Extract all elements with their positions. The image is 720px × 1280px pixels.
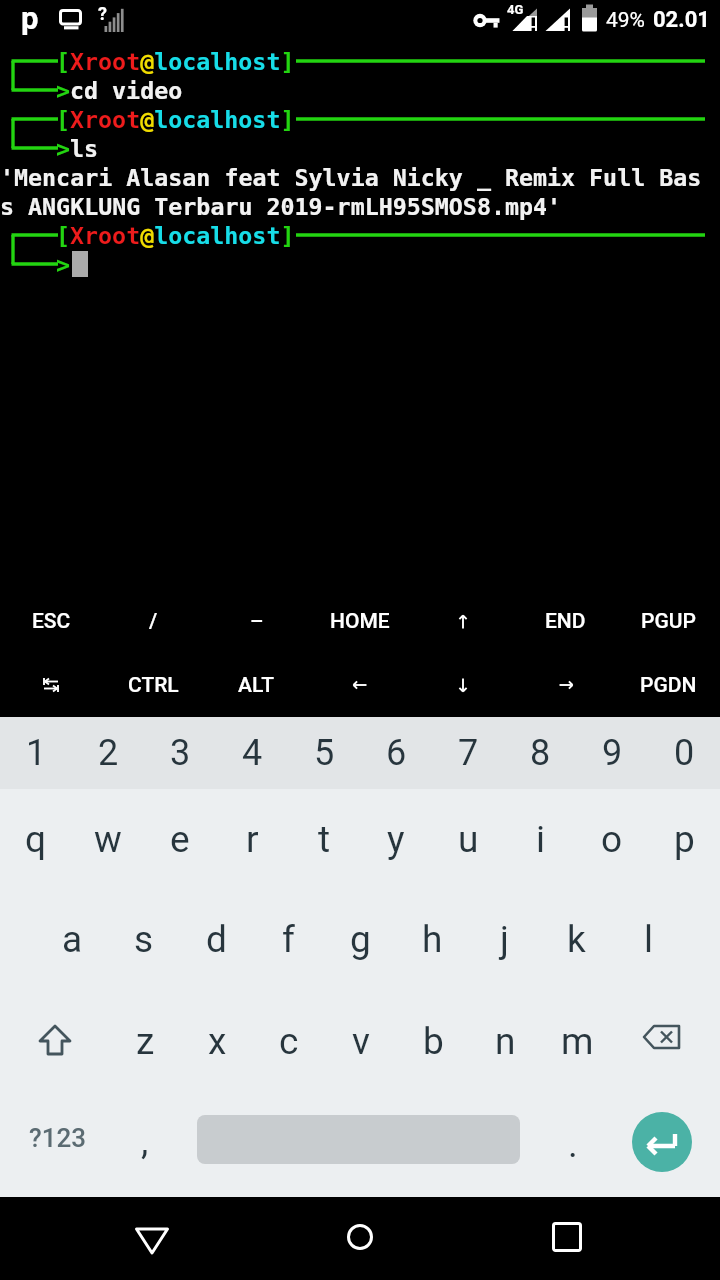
staticText: 49% xyxy=(606,8,645,33)
staticText: ESC xyxy=(32,609,71,634)
staticText: PGDN xyxy=(640,673,697,698)
button[interactable]: u xyxy=(432,790,504,888)
button[interactable]: 6 xyxy=(360,717,432,789)
staticText: z xyxy=(136,1020,155,1063)
button[interactable]: CTRL xyxy=(102,653,205,717)
button[interactable]: g xyxy=(324,890,396,988)
staticText: PGUP xyxy=(641,609,696,634)
button[interactable]: r xyxy=(216,790,288,888)
button[interactable] xyxy=(5,990,105,1092)
button[interactable] xyxy=(609,990,715,1092)
button[interactable]: s xyxy=(108,890,180,988)
button[interactable]: t xyxy=(288,790,360,888)
button[interactable]: b xyxy=(397,990,469,1092)
button[interactable]: w xyxy=(72,790,144,888)
button[interactable] xyxy=(0,653,102,717)
button[interactable]: – xyxy=(205,590,308,653)
button[interactable]: 3 xyxy=(144,717,216,789)
button[interactable]: ESC xyxy=(0,590,102,653)
staticText: 3 xyxy=(170,732,191,774)
button[interactable] xyxy=(514,653,617,717)
staticText: s xyxy=(134,918,154,961)
button[interactable]: j xyxy=(468,890,540,988)
staticText: t xyxy=(318,818,331,861)
button[interactable] xyxy=(330,1207,390,1267)
button[interactable]: HOME xyxy=(308,590,411,653)
button[interactable]: PGUP xyxy=(617,590,720,653)
staticText: 'Mencari Alasan feat Sylvia Nicky _ Remi… xyxy=(0,164,702,191)
button[interactable] xyxy=(411,590,514,653)
staticText: / xyxy=(149,609,158,634)
staticText: ?123 xyxy=(29,1123,86,1153)
button[interactable]: h xyxy=(396,890,468,988)
button[interactable] xyxy=(537,1207,597,1267)
button[interactable]: c xyxy=(253,990,325,1092)
button[interactable]: p xyxy=(648,790,720,888)
button[interactable] xyxy=(122,1210,182,1270)
staticText: y xyxy=(387,818,405,861)
button[interactable]: 7 xyxy=(432,717,504,789)
staticText: h xyxy=(422,918,443,961)
staticText: 7 xyxy=(458,732,479,774)
button[interactable]: v xyxy=(325,990,397,1092)
staticText: [Xroot@localhost] xyxy=(56,106,295,133)
button[interactable]: l xyxy=(612,890,684,988)
staticText: 1 xyxy=(26,732,47,774)
button[interactable]: k xyxy=(540,890,612,988)
button[interactable]: , xyxy=(110,1092,180,1190)
button[interactable]: 4 xyxy=(216,717,288,789)
button[interactable]: x xyxy=(181,990,253,1092)
staticText: q xyxy=(25,818,47,861)
staticText: r xyxy=(246,818,259,861)
button[interactable]: / xyxy=(102,590,205,653)
staticText: k xyxy=(567,918,586,961)
staticText: 02.01 xyxy=(653,7,710,33)
staticText: f xyxy=(282,918,295,961)
button[interactable]: q xyxy=(0,790,72,888)
button[interactable]: 5 xyxy=(288,717,360,789)
button[interactable]: f xyxy=(252,890,324,988)
staticText: u xyxy=(458,818,479,861)
button[interactable]: i xyxy=(504,790,576,888)
staticText: > xyxy=(56,135,71,162)
staticText: > xyxy=(56,251,71,278)
button[interactable] xyxy=(632,1112,692,1172)
staticText: END xyxy=(545,609,586,634)
staticText: [Xroot@localhost] xyxy=(56,48,295,75)
staticText: CTRL xyxy=(128,673,179,698)
staticText: HOME xyxy=(330,609,390,634)
staticText: s ANGKLUNG Terbaru 2019-rmLH95SMOS8.mp4' xyxy=(0,193,562,220)
staticText: g xyxy=(350,918,371,961)
staticText: l xyxy=(644,918,653,961)
staticText: 8 xyxy=(530,732,551,774)
staticText: e xyxy=(170,818,190,861)
button[interactable]: z xyxy=(109,990,181,1092)
staticText: b xyxy=(423,1020,444,1063)
button[interactable]: 0 xyxy=(648,717,720,789)
button[interactable]: 1 xyxy=(0,717,72,789)
staticText: i xyxy=(536,818,545,861)
button[interactable]: a xyxy=(36,890,108,988)
staticText: p xyxy=(674,818,695,861)
button[interactable]: y xyxy=(360,790,432,888)
button[interactable] xyxy=(308,653,411,717)
button[interactable]: e xyxy=(144,790,216,888)
button[interactable]: o xyxy=(576,790,648,888)
button[interactable] xyxy=(411,653,514,717)
button[interactable]: ?123 xyxy=(5,1086,109,1190)
staticText: 9 xyxy=(602,732,623,774)
button[interactable]: m xyxy=(541,990,613,1092)
button[interactable]: PGDN xyxy=(617,653,720,717)
button[interactable]: . xyxy=(538,1095,608,1193)
staticText: v xyxy=(352,1020,370,1063)
button[interactable]: END xyxy=(514,590,617,653)
staticText: , xyxy=(141,1120,149,1163)
button[interactable]: n xyxy=(469,990,541,1092)
button[interactable]: 9 xyxy=(576,717,648,789)
button[interactable]: 8 xyxy=(504,717,576,789)
staticText: d xyxy=(206,918,227,961)
button[interactable]: ALT xyxy=(205,653,308,717)
button[interactable]: 2 xyxy=(72,717,144,789)
button[interactable]: d xyxy=(180,890,252,988)
